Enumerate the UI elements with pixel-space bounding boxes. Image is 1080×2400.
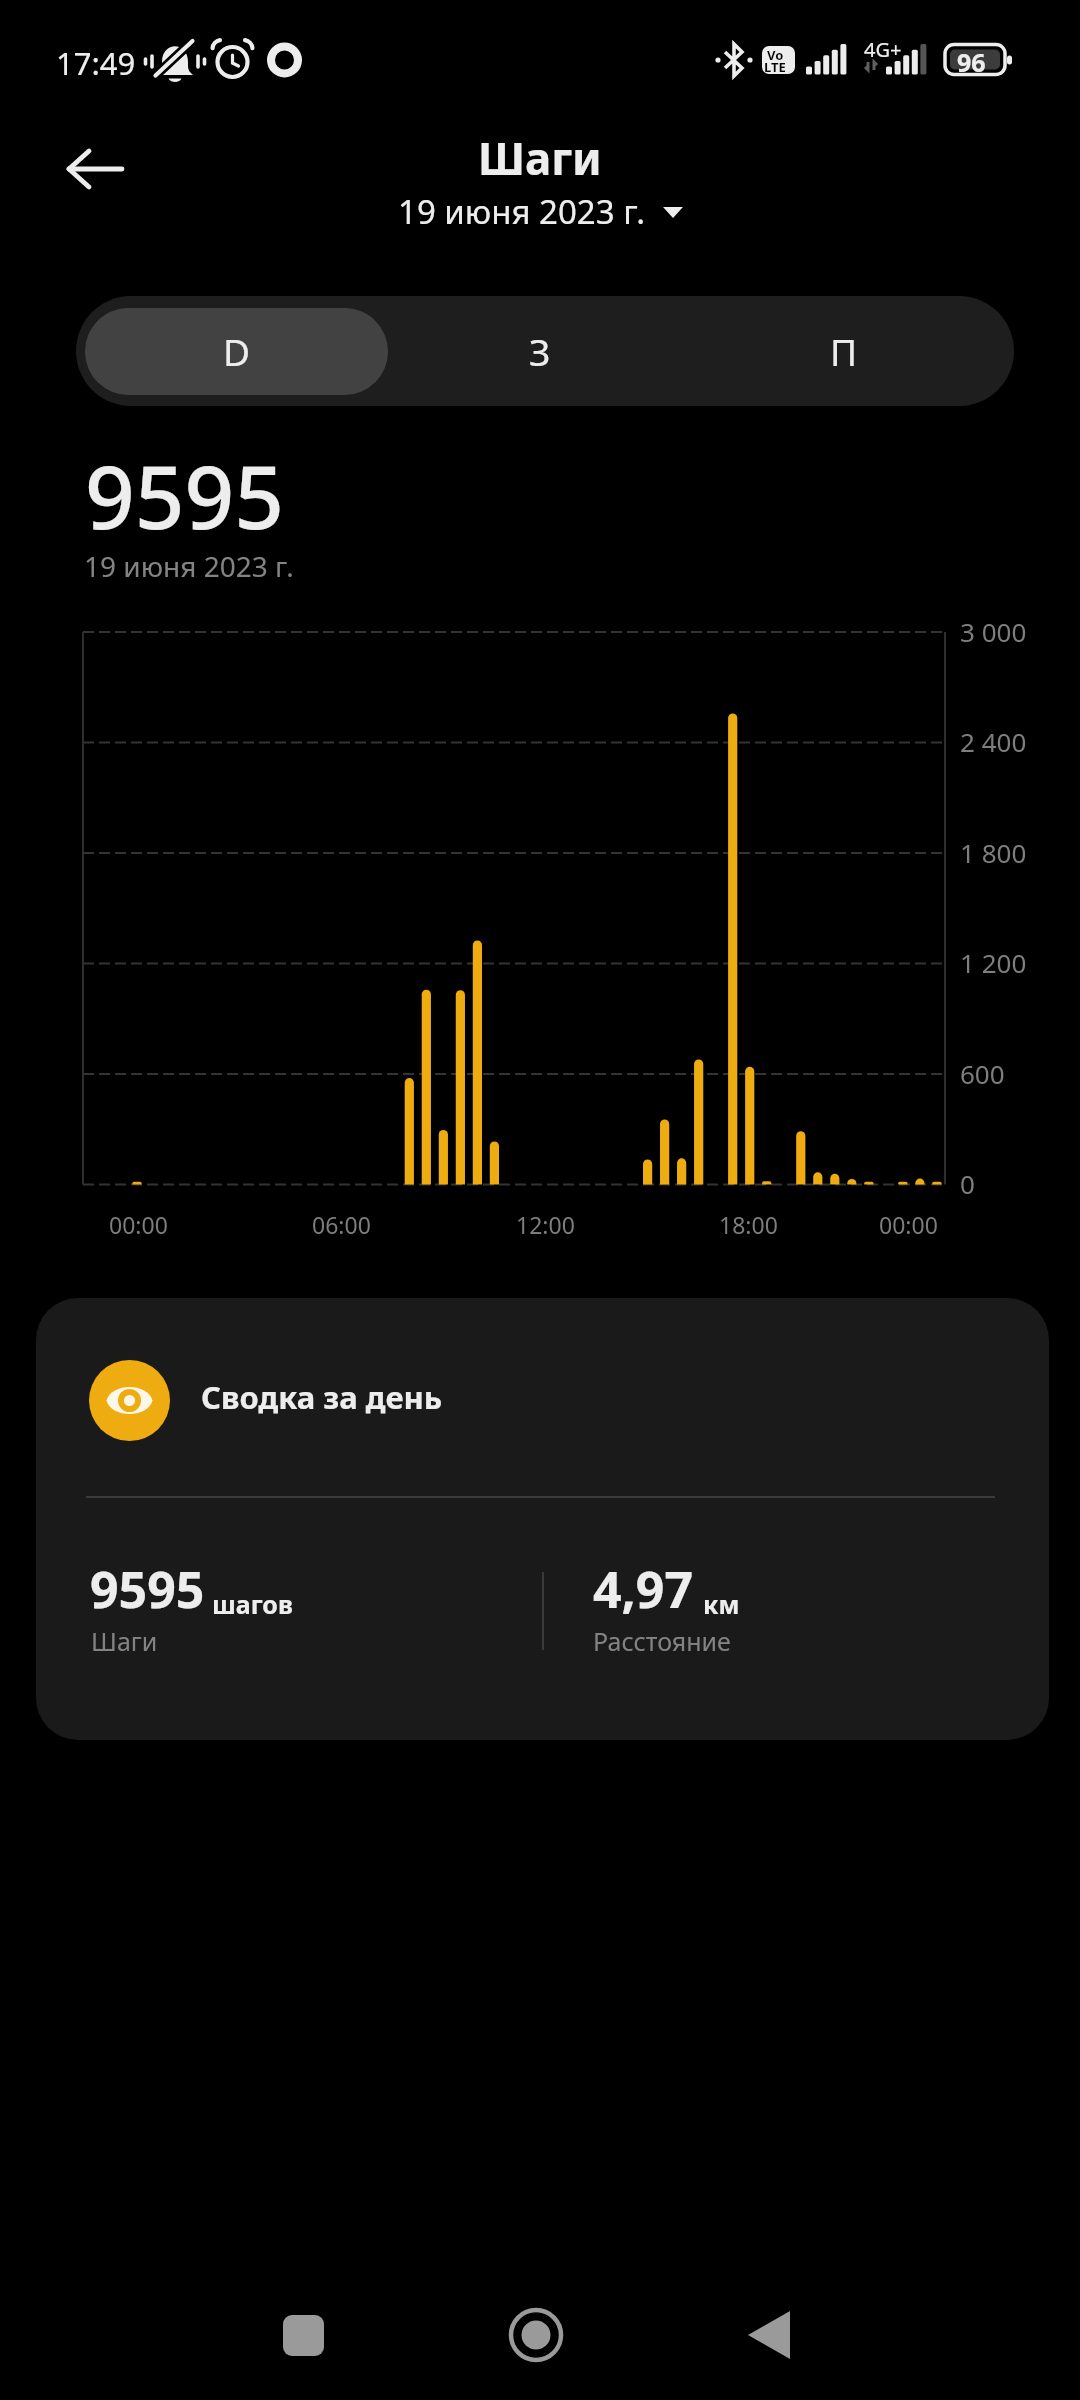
button[interactable]: Change date [392, 182, 689, 241]
staticText: 4G+ [864, 36, 902, 63]
staticText: 2 400 [960, 724, 1027, 759]
staticText: 0 [960, 1166, 975, 1201]
staticText: 06:00 [312, 1209, 371, 1240]
staticText: 9595 [85, 436, 285, 554]
button[interactable]: Recents [243, 2275, 363, 2395]
staticText: 3 000 [960, 614, 1027, 649]
staticText: Шаги [478, 128, 602, 188]
staticText: шагов [212, 1587, 293, 1621]
staticText: 18:00 [719, 1209, 778, 1240]
button[interactable]: Back [710, 2275, 830, 2395]
staticText: 9595 [90, 1555, 205, 1623]
staticText: 1 200 [960, 945, 1027, 980]
staticText: 96 [957, 45, 986, 79]
button[interactable]: D [85, 308, 388, 395]
staticText: 00:00 [109, 1209, 168, 1240]
staticText: 19 июня 2023 г. [398, 189, 646, 234]
staticText: Vo [767, 46, 784, 64]
button[interactable]: Сводка за день [36, 1298, 1049, 1740]
staticText: П [830, 326, 858, 376]
staticText: Сводка за день [201, 1376, 443, 1418]
button[interactable]: П [726, 308, 962, 395]
staticText: 00:00 [879, 1209, 938, 1240]
staticText: D [223, 326, 251, 376]
staticText: 19 июня 2023 г. [84, 547, 294, 585]
button[interactable]: З [388, 308, 691, 395]
button[interactable]: Home [476, 2275, 596, 2395]
button[interactable]: Back [45, 128, 145, 208]
staticText: Шаги [91, 1624, 158, 1658]
staticText: LTE [764, 58, 786, 76]
staticText: км [703, 1587, 740, 1621]
staticText: 600 [960, 1056, 1005, 1091]
staticText: З [529, 326, 551, 376]
staticText: 12:00 [516, 1209, 575, 1240]
staticText: 1 800 [960, 835, 1027, 870]
staticText: 4,97 [593, 1555, 694, 1623]
staticText: Расстояние [593, 1624, 731, 1658]
staticText: 17:49 [56, 42, 136, 84]
